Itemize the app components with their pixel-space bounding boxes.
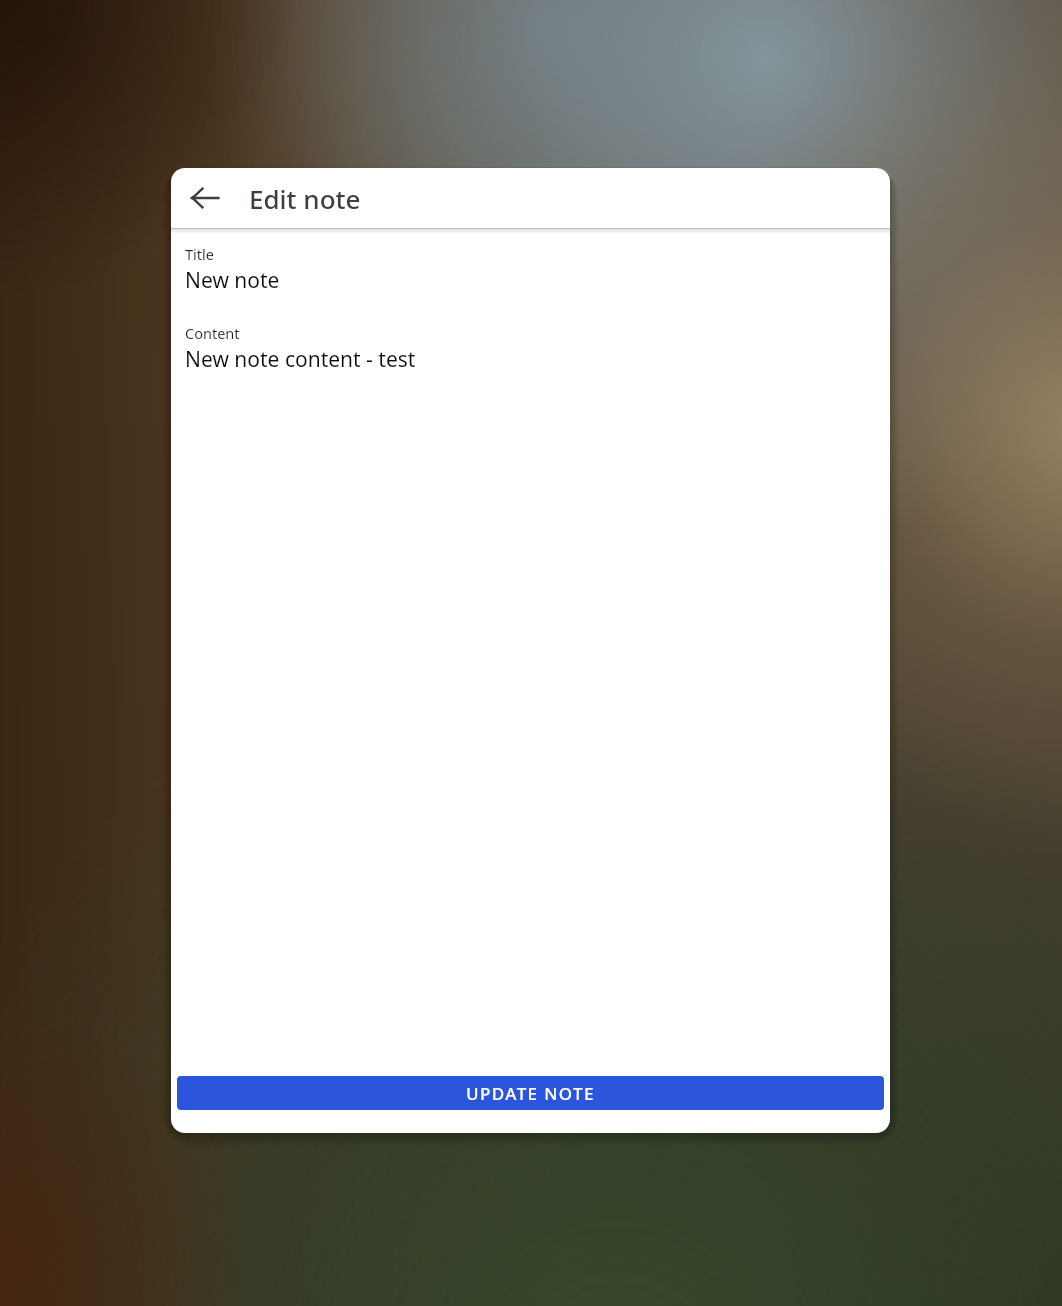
staticText: UPDATE NOTE [466,1082,595,1105]
staticText: Content [185,323,240,343]
staticText: New note [185,266,280,295]
button[interactable]: Content [185,323,876,374]
staticText: Title [185,244,214,264]
staticText: Edit note [249,181,361,216]
button[interactable]: Navigate up [181,174,229,222]
button[interactable]: UPDATE NOTE [177,1076,884,1110]
button[interactable]: Title [185,244,876,295]
staticText: New note content - test [185,345,416,374]
